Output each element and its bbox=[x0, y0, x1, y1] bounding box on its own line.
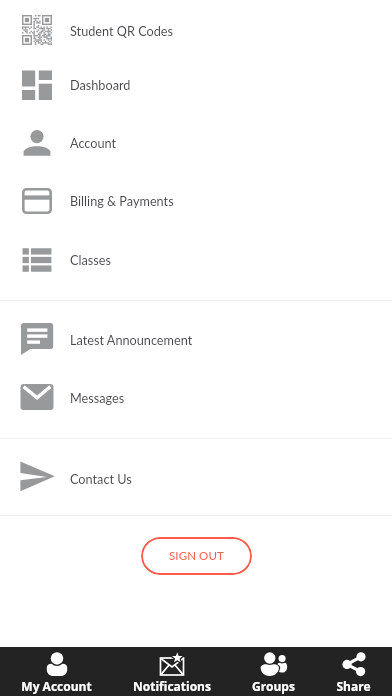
staticText: Notifications bbox=[133, 678, 211, 694]
staticText: Contact Us bbox=[70, 471, 132, 486]
button[interactable]: Share bbox=[336, 647, 371, 696]
button[interactable]: Account bbox=[0, 113, 392, 171]
staticText: SIGN OUT bbox=[169, 549, 224, 563]
staticText: Student QR Codes bbox=[70, 23, 174, 38]
button[interactable]: My Account bbox=[21, 647, 92, 696]
button[interactable]: Messages bbox=[0, 368, 392, 426]
staticText: Groups bbox=[252, 678, 295, 694]
staticText: Billing & Payments bbox=[70, 193, 174, 208]
staticText: Messages bbox=[70, 390, 125, 405]
button[interactable]: Dashboard bbox=[0, 55, 392, 113]
button[interactable]: Classes bbox=[0, 230, 392, 288]
staticText: Classes bbox=[70, 252, 111, 267]
button[interactable]: Notifications bbox=[133, 647, 211, 696]
staticText: Dashboard bbox=[70, 77, 131, 92]
button[interactable]: Student QR Codes bbox=[0, 5, 392, 55]
button[interactable]: Billing & Payments bbox=[0, 171, 392, 230]
button[interactable]: Latest Announcement bbox=[0, 310, 392, 368]
staticText: My Account bbox=[21, 678, 92, 694]
staticText: Share bbox=[336, 678, 371, 694]
button[interactable]: Contact Us bbox=[0, 449, 392, 507]
staticText: Latest Announcement bbox=[70, 332, 193, 347]
button[interactable]: Groups bbox=[252, 647, 295, 696]
button[interactable]: SIGN OUT bbox=[141, 537, 252, 575]
staticText: Account bbox=[70, 135, 117, 150]
